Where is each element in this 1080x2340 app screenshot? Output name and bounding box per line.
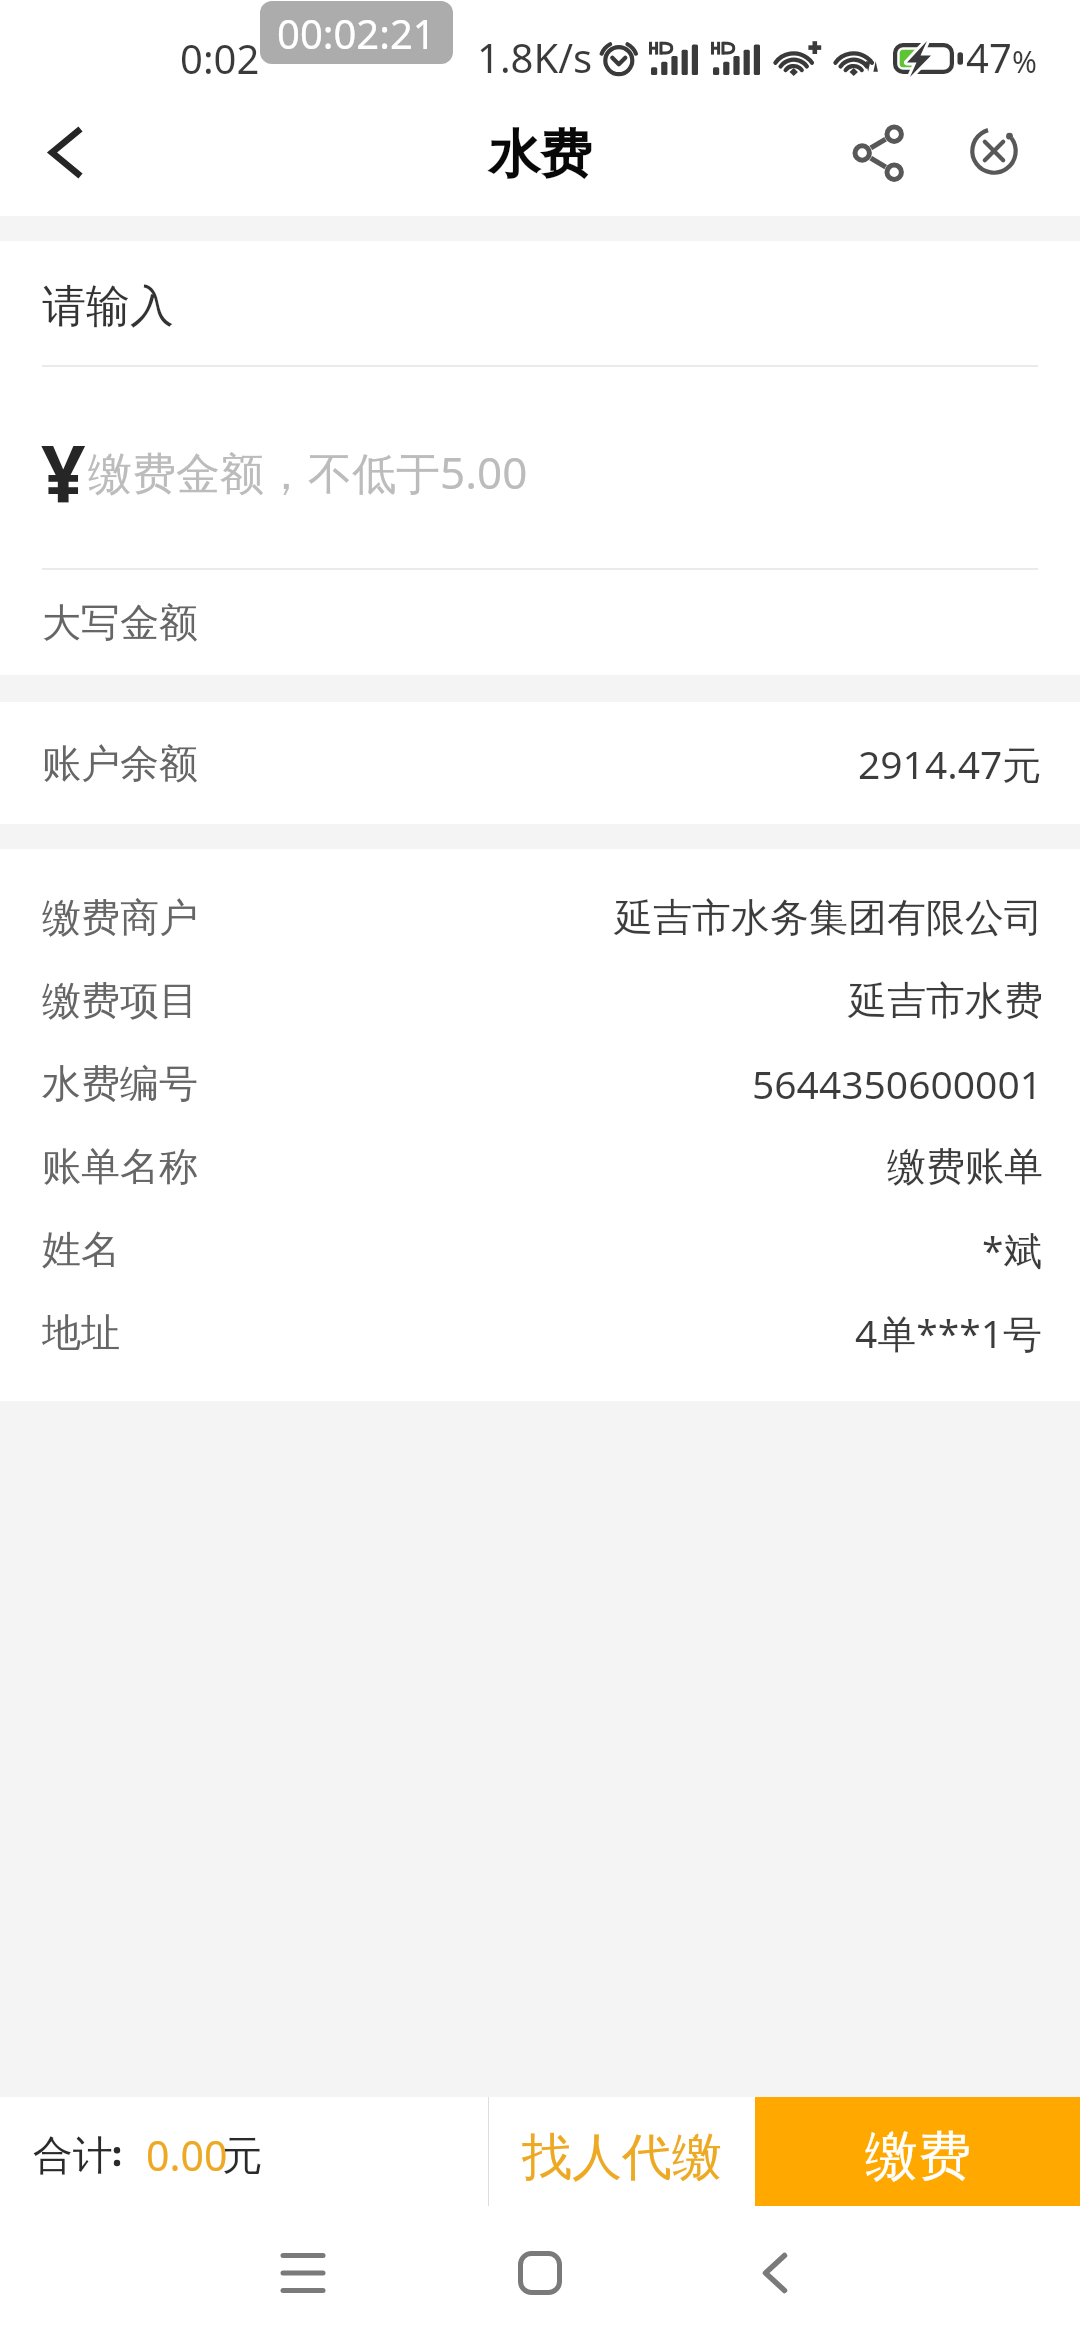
staticText: 找人代缴 (522, 2126, 722, 2189)
button[interactable]: 找人代缴 (489, 2097, 755, 2206)
staticText: 元 (222, 2130, 262, 2180)
staticText: 缴费金额，不低于5.00 (88, 442, 528, 502)
staticText: 大写金额 (42, 598, 198, 647)
button[interactable]: Close (935, 101, 1045, 211)
staticText: 47 (966, 30, 1012, 84)
staticText: 地址 (42, 1308, 120, 1357)
staticText: 缴费项目 (42, 976, 198, 1025)
staticText: 5644350600001 (752, 1057, 1043, 1110)
staticText: 账户余额 (42, 739, 198, 788)
staticText: 姓名 (42, 1225, 120, 1274)
button[interactable]: ¥ (0, 367, 1080, 568)
staticText: 请输入 (42, 279, 174, 334)
staticText: 缴费账单 (887, 1142, 1043, 1191)
staticText: 水费编号 (42, 1059, 198, 1108)
staticText: 2914.47元 (858, 737, 1042, 790)
button[interactable]: Recent apps (243, 2213, 363, 2333)
staticText: 缴费商户 (42, 893, 198, 942)
staticText: 4单***1号 (855, 1306, 1043, 1359)
button[interactable]: Back (0, 95, 128, 216)
staticText: 00:02:21 (277, 6, 436, 60)
staticText: *斌 (982, 1223, 1043, 1276)
staticText: 账单名称 (42, 1142, 198, 1191)
staticText: 延吉市水费 (848, 976, 1043, 1025)
button[interactable]: Home (480, 2213, 600, 2333)
staticText: 水费 (488, 122, 592, 188)
button[interactable]: 缴费 (755, 2097, 1080, 2206)
button[interactable]: 请输入 (0, 241, 1080, 365)
staticText: 1.8K/s (477, 30, 593, 84)
staticText: 0.00 (146, 2127, 228, 2183)
staticText: 合计 (33, 2130, 113, 2180)
staticText: ¥ (41, 420, 86, 526)
button[interactable]: Share (825, 101, 935, 211)
staticText: 0:02 (180, 31, 260, 85)
staticText: 缴费 (865, 2123, 971, 2190)
button[interactable]: Back (715, 2213, 835, 2333)
staticText: 延吉市水务集团有限公司 (614, 893, 1043, 942)
staticText: % (1012, 41, 1037, 82)
